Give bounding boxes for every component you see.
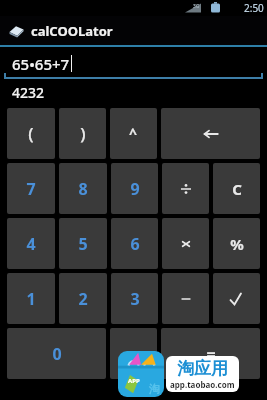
button[interactable]: ) — [59, 108, 106, 159]
staticText: calCOOLator — [31, 22, 113, 40]
button[interactable]: Divide — [162, 163, 209, 214]
button[interactable]: 4 — [7, 218, 55, 269]
button[interactable]: Multiply — [162, 218, 209, 269]
button[interactable]: = — [161, 328, 260, 379]
staticText: 3 — [130, 288, 140, 310]
button[interactable]: 6 — [111, 218, 158, 269]
button[interactable]: 7 — [7, 163, 55, 214]
button[interactable]: SquareRoot — [213, 273, 260, 324]
staticText: ^ — [129, 124, 138, 143]
staticText: 淘 — [149, 382, 160, 396]
staticText: . — [131, 343, 136, 365]
button[interactable]: Backspace — [161, 108, 260, 159]
staticText: 7 — [26, 178, 36, 200]
button[interactable]: 2 — [59, 273, 107, 324]
button[interactable]: % — [213, 218, 260, 269]
button[interactable]: . — [110, 328, 157, 379]
button[interactable]: 5 — [59, 218, 107, 269]
staticText: 淘应用 — [177, 358, 228, 379]
staticText: 6 — [130, 233, 140, 255]
button[interactable]: 0 — [7, 328, 106, 379]
staticText: ) — [80, 122, 86, 145]
button[interactable]: 1 — [7, 273, 55, 324]
staticText: 1 — [26, 288, 36, 310]
staticText: 2:50 — [244, 1, 264, 15]
staticText: % — [230, 234, 244, 254]
staticText: = — [206, 343, 216, 365]
staticText: 3G — [193, 3, 200, 10]
button[interactable]: 9 — [111, 163, 158, 214]
button[interactable]: 8 — [59, 163, 107, 214]
button[interactable]: C — [213, 163, 260, 214]
staticText: 0 — [52, 343, 62, 365]
staticText: 5 — [78, 233, 88, 255]
staticText: 8 — [78, 178, 88, 200]
staticText: 9 — [130, 178, 140, 200]
staticText: C — [232, 179, 242, 199]
staticText: 2 — [78, 288, 88, 310]
button[interactable]: 3 — [111, 273, 158, 324]
button[interactable]: Power — [110, 108, 157, 159]
staticText: 4232 — [12, 83, 45, 102]
staticText: 65•65+7 — [12, 54, 70, 74]
staticText: APP — [128, 377, 140, 385]
staticText: ( — [28, 122, 34, 145]
staticText: 4 — [26, 233, 36, 255]
button[interactable]: Minus — [162, 273, 209, 324]
staticText: app.taobao.com — [170, 379, 235, 390]
button[interactable]: ( — [7, 108, 55, 159]
